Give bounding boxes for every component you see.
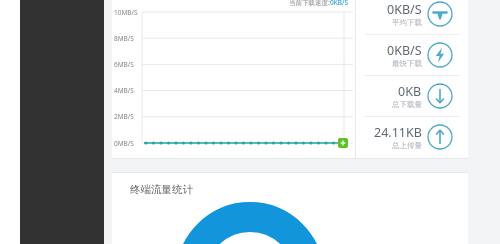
staticText: 0KB/S: [387, 42, 422, 59]
staticText: 10MB/S: [114, 8, 138, 17]
staticText: 终端流量统计: [130, 183, 193, 196]
staticText: 最快下载: [392, 59, 422, 68]
staticText: 平均下载: [392, 18, 422, 27]
button[interactable]: Total downloaded: [356, 76, 468, 116]
staticText: 4MB/S: [114, 86, 134, 95]
staticText: 总上传量: [392, 141, 422, 150]
staticText: 2MB/S: [114, 112, 134, 121]
button[interactable]: Average download speed: [356, 0, 468, 34]
staticText: 0KB: [398, 83, 422, 100]
staticText: 0MB/S: [114, 139, 134, 148]
staticText: 6MB/S: [114, 60, 134, 69]
staticText: 0KB/S: [330, 0, 348, 7]
staticText: 当前下载速度:: [289, 0, 330, 7]
staticText: 总下载量: [392, 100, 422, 109]
staticText: 8MB/S: [114, 34, 134, 43]
staticText: 24.11KB: [374, 124, 422, 141]
staticText: 0KB/S: [387, 1, 422, 18]
button[interactable]: Fastest download speed: [356, 35, 468, 75]
button[interactable]: Total uploaded: [356, 117, 468, 157]
